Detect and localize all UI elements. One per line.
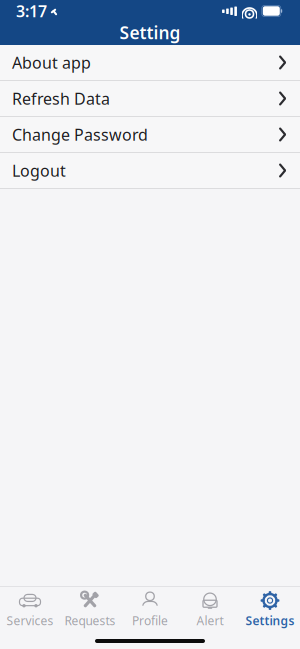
- staticText: About app: [12, 52, 91, 73]
- staticText: Refresh Data: [12, 88, 110, 109]
- staticText: Alert: [196, 612, 223, 628]
- button[interactable]: Profile: [120, 588, 180, 632]
- button[interactable]: Alert: [180, 588, 240, 632]
- button[interactable]: About app: [0, 45, 300, 81]
- staticText: Profile: [132, 612, 168, 628]
- button[interactable]: Change Password: [0, 117, 300, 153]
- staticText: Services: [6, 612, 53, 628]
- button[interactable]: Requests: [60, 588, 120, 632]
- button[interactable]: Logout: [0, 153, 300, 189]
- staticText: Change Password: [12, 124, 148, 145]
- button[interactable]: Settings: [240, 588, 300, 632]
- button[interactable]: Refresh Data: [0, 81, 300, 117]
- staticText: Logout: [12, 160, 66, 181]
- staticText: Setting: [119, 21, 180, 44]
- staticText: Settings: [245, 612, 294, 628]
- staticText: Requests: [64, 612, 115, 628]
- staticText: 3:17: [16, 0, 47, 22]
- button[interactable]: Services: [0, 588, 60, 632]
